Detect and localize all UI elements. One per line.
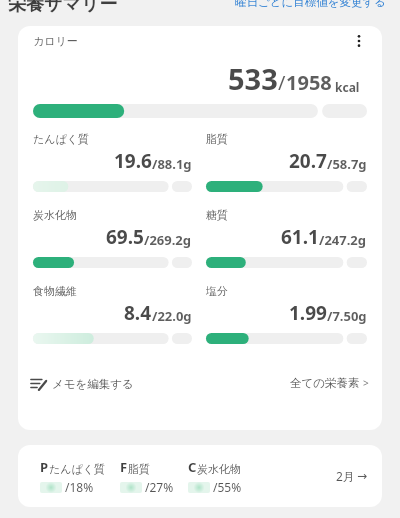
staticText: 69.5 <box>106 224 144 250</box>
staticText: 糖質 <box>206 208 228 222</box>
staticText: たんぱく質 <box>49 462 106 476</box>
staticText: /247.2g <box>319 231 367 249</box>
staticText: /7.50g <box>327 307 367 325</box>
staticText: 脂質 <box>128 462 150 476</box>
staticText: 食物繊維 <box>33 284 77 298</box>
staticText: 19.6 <box>114 148 152 174</box>
staticText: 8.4 <box>124 300 152 326</box>
staticText: 61.1 <box>281 224 319 250</box>
staticText: /58.7g <box>327 155 367 173</box>
staticText: 2月 <box>336 468 355 484</box>
staticText: P <box>40 458 49 476</box>
staticText: 20.7 <box>289 148 327 174</box>
staticText: 1.99 <box>289 300 327 326</box>
button[interactable]: More options <box>346 28 372 54</box>
staticText: メモを編集する <box>52 377 134 391</box>
staticText: 全ての栄養素 <box>290 376 360 390</box>
staticText: kcal <box>335 79 360 95</box>
staticText: 533 <box>228 59 278 98</box>
staticText: たんぱく質 <box>33 132 90 146</box>
button[interactable]: 曜日ごとに目標値を変更する <box>235 0 387 9</box>
staticText: 曜日ごとに目標値を変更する <box>235 0 387 9</box>
staticText: 塩分 <box>206 284 228 298</box>
staticText: 脂質 <box>206 132 228 146</box>
staticText: C <box>188 458 197 476</box>
staticText: /18% <box>65 479 94 495</box>
staticText: カロリー <box>33 34 78 48</box>
button[interactable]: P <box>18 445 382 507</box>
staticText: /88.1g <box>152 155 192 173</box>
staticText: 炭水化物 <box>33 208 77 222</box>
staticText: > <box>363 376 369 390</box>
button[interactable]: 全ての栄養素 <box>290 376 369 390</box>
staticText: 炭水化物 <box>197 462 241 476</box>
staticText: /27% <box>145 479 174 495</box>
staticText: /269.2g <box>144 231 192 249</box>
staticText: /22.0g <box>152 307 192 325</box>
staticText: F <box>120 458 128 476</box>
staticText: / <box>278 69 286 96</box>
staticText: → <box>357 469 368 483</box>
button[interactable]: メモを編集する <box>30 375 134 392</box>
staticText: 栄養サマリー <box>8 0 118 16</box>
staticText: 1958 <box>286 69 332 96</box>
staticText: /55% <box>213 479 242 495</box>
